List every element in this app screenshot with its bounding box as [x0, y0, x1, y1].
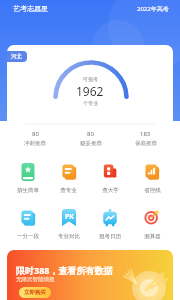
button[interactable]: 专业对比	[48, 208, 89, 240]
staticText: 183	[140, 130, 151, 138]
staticText: 查专业	[60, 187, 77, 194]
staticText: PK	[65, 212, 74, 222]
staticText: 一分一段	[17, 233, 39, 240]
staticText: 省控线	[144, 187, 161, 194]
staticText: 2022年高考	[137, 5, 169, 13]
button[interactable]: 80	[63, 130, 118, 147]
staticText: 1962	[76, 83, 104, 99]
staticText: 艺考志愿星	[13, 4, 48, 13]
staticText: 招生简章	[17, 187, 39, 194]
staticText: 冲刺推荐	[24, 140, 46, 147]
staticText: 河北	[11, 53, 22, 60]
button[interactable]: 限时388，查看所有数据	[7, 250, 173, 300]
button[interactable]: 报考日历	[89, 208, 131, 240]
button[interactable]: 查专业	[48, 162, 89, 194]
button[interactable]: 立即购买	[19, 287, 51, 298]
button[interactable]: 查大学	[89, 162, 131, 194]
staticText: 无限次智能填报	[16, 276, 55, 283]
staticText: 80	[32, 130, 39, 138]
staticText: 测算器	[144, 233, 161, 240]
staticText: 立即购买	[24, 289, 46, 296]
button[interactable]: 183	[118, 130, 173, 147]
button[interactable]: 80	[7, 130, 63, 147]
button[interactable]: 招生简章	[7, 162, 48, 194]
staticText: 80	[87, 130, 94, 138]
staticText: 查大学	[102, 187, 119, 194]
button[interactable]: 测算器	[131, 208, 173, 240]
staticText: 稳妥推荐	[80, 140, 102, 147]
button[interactable]: 河北	[7, 51, 27, 62]
button[interactable]: 省控线	[131, 162, 173, 194]
staticText: 保底推荐	[135, 140, 157, 147]
staticText: 可报考	[83, 76, 98, 82]
staticText: 报考日历	[99, 233, 121, 240]
staticText: 专业对比	[58, 233, 80, 240]
staticText: 个专业	[83, 100, 98, 106]
button[interactable]: 一分一段	[7, 208, 48, 240]
staticText: 限时388，查看所有数据	[16, 264, 113, 276]
